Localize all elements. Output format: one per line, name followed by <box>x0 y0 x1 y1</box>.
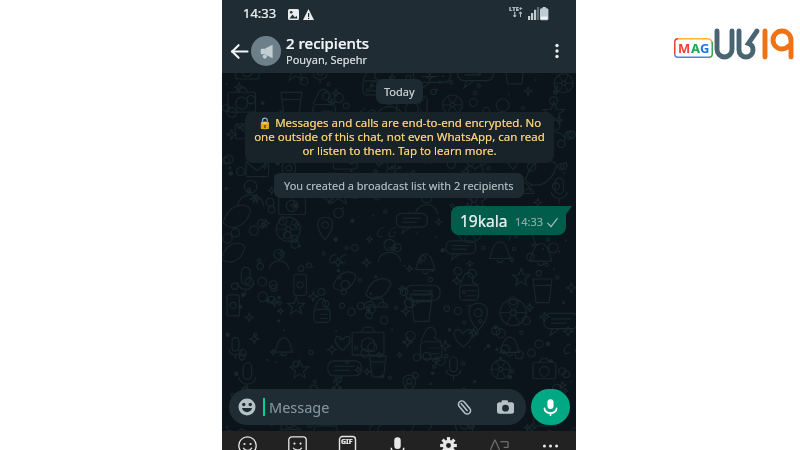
button[interactable]: 🔒 Messages and calls are end-to-end encr… <box>245 112 554 163</box>
button[interactable]: GIF <box>322 431 372 450</box>
button[interactable]: Emoji <box>222 431 272 450</box>
button[interactable]: Camera <box>493 395 517 419</box>
staticText: Message <box>269 397 452 417</box>
staticText: Pouyan, Sepehr <box>286 52 368 67</box>
staticText: 14:33 <box>243 4 277 22</box>
button[interactable]: Broadcast list avatar <box>251 36 281 66</box>
staticText: 14:33 <box>515 214 544 229</box>
button[interactable]: Translate <box>474 431 525 450</box>
staticText: 🔒 Messages and calls are end-to-end encr… <box>252 115 547 159</box>
staticText: A <box>691 39 700 57</box>
button[interactable]: You created a broadcast list with 2 reci… <box>274 173 524 198</box>
staticText: ↓↑ <box>512 11 524 19</box>
button[interactable]: 19kala <box>451 206 566 235</box>
staticText: 19kala <box>460 210 508 231</box>
button[interactable]: Settings <box>423 431 474 450</box>
button[interactable]: Stickers <box>272 431 322 450</box>
button[interactable]: Emoji <box>229 389 526 425</box>
staticText: GIF <box>341 437 353 447</box>
button[interactable]: Voice message <box>531 389 570 425</box>
staticText: G <box>700 39 710 57</box>
staticText: Today <box>384 84 415 99</box>
button[interactable]: Voice input <box>372 431 423 450</box>
staticText: LTE+ <box>509 5 523 13</box>
button[interactable]: Attach <box>452 395 476 419</box>
button[interactable]: More <box>525 431 576 450</box>
button[interactable]: Emoji <box>238 398 256 416</box>
button[interactable]: Today <box>376 79 423 104</box>
staticText: M <box>678 39 691 57</box>
staticText: You created a broadcast list with 2 reci… <box>284 178 514 193</box>
button[interactable]: More options <box>543 37 571 65</box>
button[interactable]: Back <box>227 39 251 63</box>
staticText: 2 recipients <box>286 33 369 53</box>
